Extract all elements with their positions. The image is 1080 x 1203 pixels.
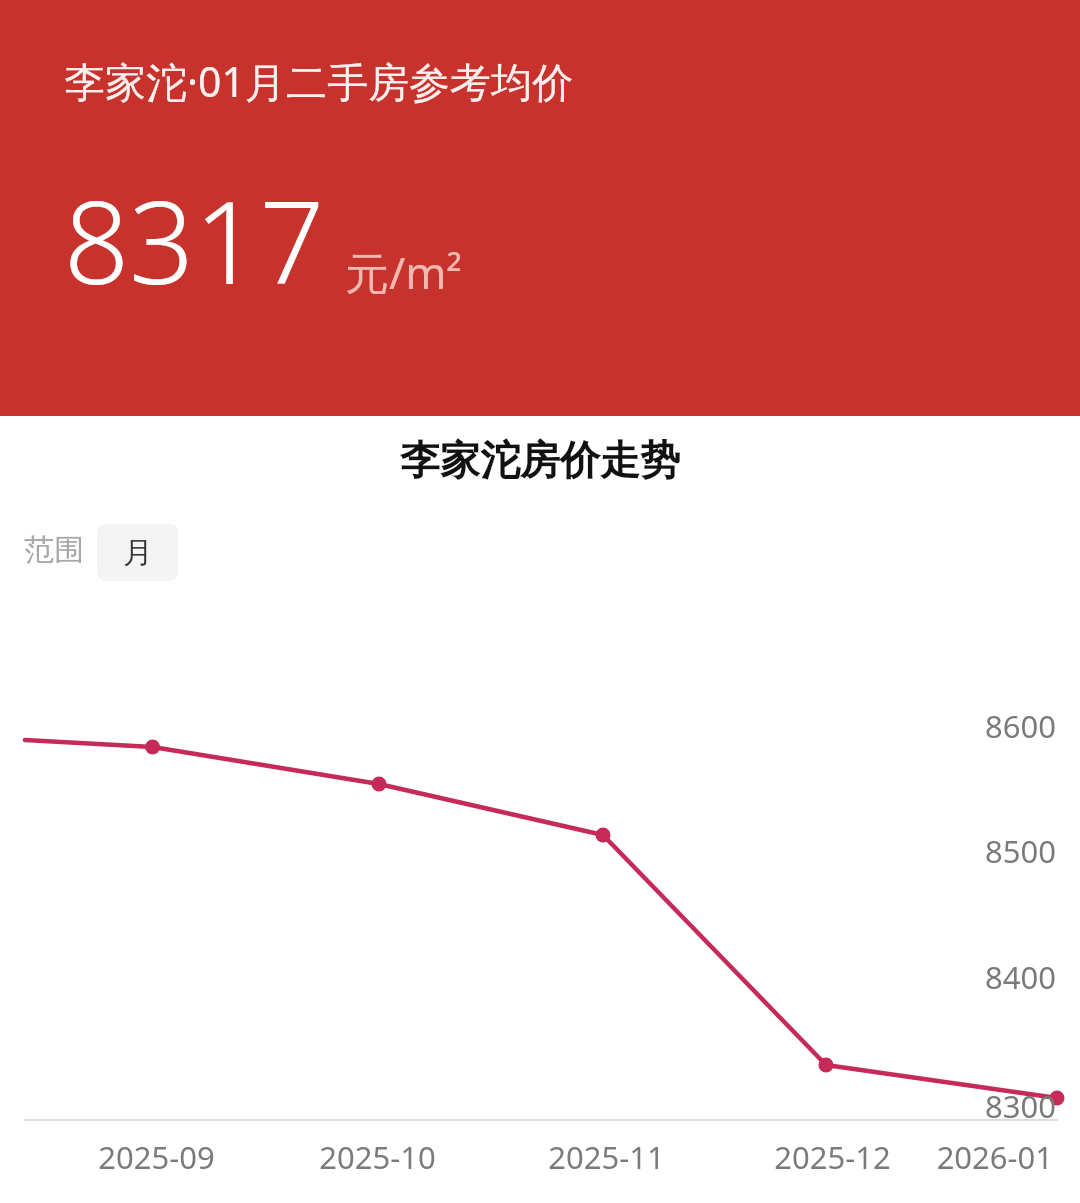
staticText: 8317: [64, 162, 325, 317]
staticText: 8500: [906, 830, 1056, 872]
staticText: 范围: [24, 531, 84, 569]
staticText: 2025-10: [319, 1136, 436, 1178]
staticText: 2026-01: [903, 1136, 1053, 1178]
staticText: 2025-09: [98, 1136, 215, 1178]
staticText: 2025-12: [774, 1136, 891, 1178]
staticText: 李家沱·01月二手房参考均价: [64, 53, 573, 109]
staticText: 8400: [906, 956, 1056, 998]
staticText: 月: [123, 534, 153, 572]
staticText: 李家沱房价走势: [400, 435, 680, 485]
button[interactable]: 月: [97, 524, 178, 581]
staticText: 8300: [906, 1085, 1056, 1127]
staticText: 元/m²: [345, 242, 462, 302]
staticText: 2025-11: [548, 1136, 665, 1178]
staticText: 8600: [906, 705, 1056, 747]
